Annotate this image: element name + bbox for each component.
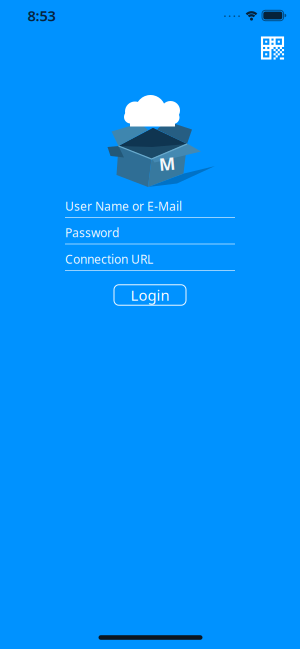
staticText: 8:53: [27, 6, 55, 25]
staticText: Login: [130, 285, 169, 305]
staticText: User Name or E-Mail: [65, 198, 182, 214]
button[interactable]: Password: [65, 225, 235, 244]
button[interactable]: Connection URL: [65, 252, 235, 271]
staticText: M: [159, 152, 175, 175]
button[interactable]: Login: [114, 285, 186, 305]
staticText: Password: [65, 224, 119, 240]
button[interactable]: User Name or E-Mail: [65, 199, 235, 218]
staticText: Connection URL: [65, 251, 153, 267]
button[interactable]: Scan QR Code: [261, 36, 284, 60]
